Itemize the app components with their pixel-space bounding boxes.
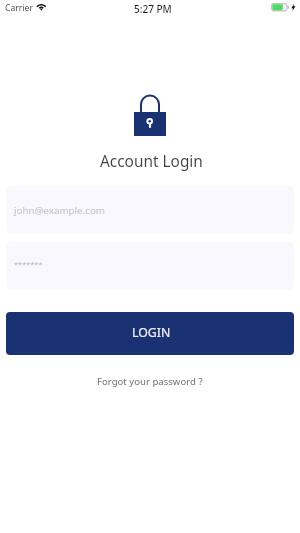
button[interactable]: LOGIN <box>6 312 294 355</box>
button[interactable]: john@example.com <box>6 186 294 234</box>
other: Secure login <box>134 94 166 136</box>
staticText: LOGIN <box>132 324 171 341</box>
staticText: Forgot your password ? <box>97 375 203 388</box>
staticText: ******* <box>14 259 43 269</box>
staticText: john@example.com <box>14 204 106 217</box>
staticText: Carrier <box>5 2 33 14</box>
button[interactable]: Forgot your password ? <box>89 372 211 391</box>
staticText: Account Login <box>100 151 203 172</box>
staticText: 5:27 PM <box>134 2 172 16</box>
